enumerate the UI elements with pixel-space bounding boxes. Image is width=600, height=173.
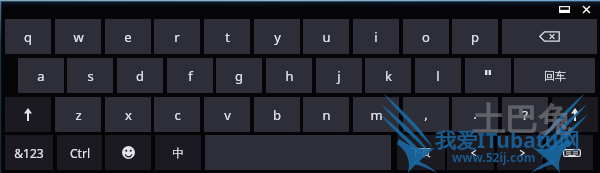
staticText: d bbox=[136, 67, 144, 85]
button[interactable]: p bbox=[452, 19, 498, 54]
button[interactable]: f bbox=[167, 58, 213, 93]
staticText: s bbox=[87, 67, 94, 85]
staticText: z bbox=[75, 106, 82, 124]
button[interactable]: 回车 bbox=[514, 58, 595, 93]
button[interactable]: Previous bbox=[447, 135, 494, 170]
button[interactable]: i bbox=[353, 19, 399, 54]
button[interactable]: e bbox=[105, 19, 151, 54]
staticText: n bbox=[322, 106, 331, 124]
staticText: j bbox=[337, 67, 341, 85]
button[interactable]: q bbox=[5, 19, 51, 54]
button[interactable]: j bbox=[316, 58, 362, 93]
staticText: 下页 bbox=[411, 146, 431, 159]
staticText: 回车 bbox=[544, 69, 566, 83]
staticText: e bbox=[124, 28, 132, 46]
staticText: 我爱ITubatu网 bbox=[435, 126, 580, 155]
button[interactable]: v bbox=[204, 97, 250, 132]
button[interactable]: k bbox=[365, 58, 411, 93]
staticText: u bbox=[322, 28, 331, 46]
button[interactable]: &123 bbox=[5, 135, 53, 170]
staticText: p bbox=[471, 28, 479, 46]
staticText: q bbox=[24, 28, 32, 46]
staticText: , bbox=[424, 105, 428, 123]
button[interactable]: . bbox=[452, 97, 498, 132]
button[interactable]: y bbox=[254, 19, 300, 54]
staticText: x bbox=[125, 106, 132, 124]
staticText: . bbox=[473, 105, 477, 123]
button[interactable]: b bbox=[254, 97, 300, 132]
button[interactable]: a bbox=[18, 58, 64, 93]
button[interactable]: c bbox=[154, 97, 200, 132]
button[interactable]: l bbox=[415, 58, 461, 93]
button[interactable]: Quote bbox=[465, 58, 511, 93]
button[interactable]: Shift bbox=[5, 97, 51, 132]
button[interactable]: Hide keyboard bbox=[546, 135, 593, 170]
button[interactable]: Emoji bbox=[105, 135, 151, 170]
button[interactable]: Next bbox=[497, 135, 543, 170]
button[interactable]: s bbox=[67, 58, 113, 93]
staticText: ? bbox=[522, 106, 528, 124]
button[interactable]: g bbox=[216, 58, 262, 93]
button[interactable]: d bbox=[117, 58, 163, 93]
staticText: 中 bbox=[172, 146, 184, 160]
staticText: k bbox=[385, 67, 392, 85]
button[interactable]: ? bbox=[502, 97, 548, 132]
staticText: &123 bbox=[14, 145, 44, 161]
staticText: r bbox=[174, 28, 180, 46]
button[interactable]: h bbox=[266, 58, 312, 93]
button[interactable]: Ctrl bbox=[57, 135, 102, 170]
staticText: o bbox=[422, 28, 430, 46]
staticText: m bbox=[370, 106, 383, 124]
button[interactable]: Shift bbox=[552, 97, 598, 132]
button[interactable]: 下页 bbox=[397, 135, 445, 170]
button[interactable]: , bbox=[403, 97, 449, 132]
button[interactable]: Backspace bbox=[502, 19, 597, 54]
button[interactable]: o bbox=[403, 19, 449, 54]
staticText: c bbox=[174, 106, 181, 124]
staticText: i bbox=[374, 28, 378, 46]
staticText: b bbox=[273, 106, 281, 124]
button[interactable]: n bbox=[303, 97, 349, 132]
button[interactable]: r bbox=[154, 19, 200, 54]
staticText: t bbox=[225, 28, 230, 46]
staticText: h bbox=[285, 67, 294, 85]
staticText: Ctrl bbox=[70, 145, 90, 161]
staticText: l bbox=[436, 67, 440, 85]
staticText: g bbox=[235, 67, 243, 85]
staticText: 土巴兔 bbox=[472, 99, 571, 141]
button[interactable]: u bbox=[303, 19, 349, 54]
button[interactable]: Dock keyboard bbox=[554, 1, 575, 18]
button[interactable]: x bbox=[105, 97, 151, 132]
button[interactable]: w bbox=[55, 19, 101, 54]
staticText: a bbox=[37, 67, 45, 85]
button[interactable]: Close bbox=[575, 1, 597, 18]
staticText: y bbox=[274, 28, 281, 46]
staticText: v bbox=[224, 106, 231, 124]
button[interactable]: t bbox=[204, 19, 250, 54]
staticText: www.52ij.com bbox=[452, 149, 536, 165]
button[interactable]: z bbox=[55, 97, 101, 132]
staticText: f bbox=[188, 67, 193, 85]
staticText: w bbox=[73, 28, 84, 46]
button[interactable]: 中 bbox=[155, 135, 201, 170]
button[interactable]: m bbox=[353, 97, 399, 132]
